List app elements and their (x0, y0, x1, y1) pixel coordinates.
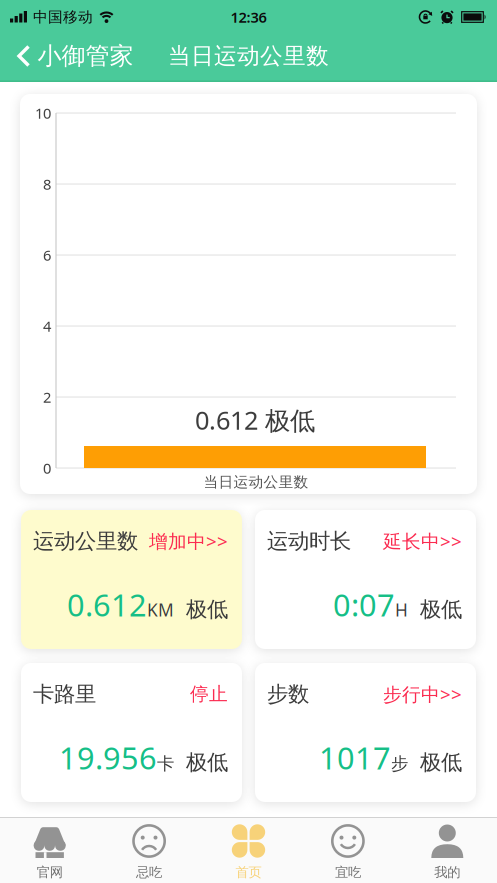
staticText: 卡 (157, 753, 174, 774)
staticText: 小御管家 (37, 41, 133, 71)
staticText: 步数 (267, 681, 309, 707)
button[interactable]: 步数 (255, 663, 476, 802)
staticText: 当日运动公里数 (203, 473, 308, 491)
button[interactable]: 我的 (398, 818, 497, 883)
staticText: KM (147, 598, 174, 621)
staticText: 极低 (186, 596, 228, 622)
staticText: 忌吃 (136, 864, 162, 880)
staticText: 6 (43, 245, 51, 265)
staticText: 增加中>> (149, 529, 228, 553)
staticText: 宜吃 (335, 864, 361, 880)
staticText: 运动公里数 (33, 528, 138, 554)
staticText: 官网 (37, 864, 63, 880)
button[interactable]: 忌吃 (99, 818, 199, 883)
staticText: 停止 (190, 683, 228, 705)
staticText: 我的 (434, 864, 460, 880)
staticText: 8 (43, 174, 51, 194)
button[interactable]: 官网 (0, 818, 99, 883)
staticText: 10 (35, 103, 51, 123)
button[interactable]: 运动时长 (255, 510, 476, 649)
button[interactable]: 首页 (199, 818, 298, 883)
staticText: 0.612 (67, 584, 147, 625)
staticText: 2 (43, 387, 51, 407)
staticText: H (395, 598, 408, 621)
button[interactable]: 卡路里 (21, 663, 242, 802)
staticText: 0 (43, 458, 51, 478)
staticText: 4 (43, 316, 51, 336)
button[interactable]: 宜吃 (298, 818, 398, 883)
staticText: 极低 (420, 749, 462, 775)
staticText: 1017 (319, 737, 391, 778)
staticText: 极低 (420, 596, 462, 622)
staticText: 极低 (186, 749, 228, 775)
staticText: 19.956 (59, 737, 157, 778)
staticText: 运动时长 (267, 528, 351, 554)
staticText: 卡路里 (33, 681, 96, 707)
staticText: 0.612 极低 (195, 403, 315, 437)
button[interactable]: 小御管家 (6, 41, 133, 71)
staticText: 延长中>> (383, 529, 462, 553)
staticText: 12:36 (230, 7, 266, 27)
staticText: 步行中>> (383, 682, 462, 706)
staticText: 中国移动 (33, 8, 93, 26)
staticText: 0:07 (333, 584, 395, 625)
staticText: 当日运动公里数 (168, 42, 329, 70)
staticText: 步 (391, 753, 408, 774)
button[interactable]: 运动公里数 (21, 510, 242, 649)
staticText: 首页 (235, 864, 261, 880)
